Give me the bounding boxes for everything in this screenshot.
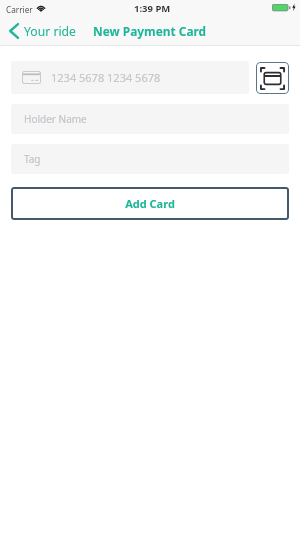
staticText: Holder Name xyxy=(24,112,87,126)
staticText: Add Card xyxy=(125,196,175,211)
button[interactable]: Scan card xyxy=(256,62,289,94)
staticText: New Payment Card xyxy=(93,23,207,39)
staticText: Your ride xyxy=(24,23,76,40)
button[interactable]: Holder Name xyxy=(11,104,289,134)
staticText: 1234 5678 1234 5678 xyxy=(51,70,161,85)
button[interactable]: Tag xyxy=(11,144,289,174)
staticText: Carrier xyxy=(6,4,33,15)
button[interactable]: Add Card xyxy=(11,187,289,220)
button[interactable]: Your ride xyxy=(0,21,82,41)
staticText: Tag xyxy=(24,152,41,166)
button[interactable]: 1234 5678 1234 5678 xyxy=(11,61,249,94)
staticText: 1:39 PM xyxy=(134,2,171,15)
